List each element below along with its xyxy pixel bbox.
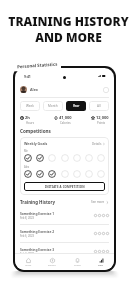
staticText: Month	[48, 104, 58, 108]
button[interactable]: Something Exercise 3	[20, 243, 109, 260]
staticText: See more	[91, 200, 105, 204]
button[interactable]: Day 4	[61, 170, 69, 178]
staticText: Alex	[30, 87, 38, 92]
staticText: Training History	[20, 199, 56, 205]
button[interactable]: 41,000	[54, 115, 72, 125]
staticText: Stats	[98, 264, 104, 267]
button[interactable]: Day 6	[85, 170, 93, 178]
staticText: Me	[24, 149, 28, 153]
button[interactable]: Notifications	[103, 87, 109, 93]
staticText: Details	[92, 142, 102, 146]
staticText: Week	[26, 104, 34, 108]
staticText: Competitions	[20, 128, 51, 134]
staticText: Weekly Goals	[24, 141, 48, 146]
staticText: Points	[97, 121, 106, 125]
button[interactable]: Day 3	[48, 170, 56, 178]
button[interactable]: Day 1	[24, 154, 32, 162]
button[interactable]: Alex	[20, 84, 109, 95]
button[interactable]: All	[89, 101, 109, 111]
staticText: 2h	[25, 115, 30, 120]
button[interactable]: Details	[92, 142, 105, 146]
button[interactable]: Year	[66, 101, 86, 111]
button[interactable]: Day 1	[24, 170, 32, 178]
button[interactable]: Day 7	[97, 154, 105, 162]
staticText: Explore	[48, 264, 56, 267]
staticText: Something Exercise 3	[20, 247, 55, 251]
staticText: Personal Statistics	[17, 61, 58, 69]
staticText: 12,000	[96, 115, 109, 120]
staticText: Profile	[74, 264, 81, 267]
staticText: 9:41	[24, 74, 31, 79]
button[interactable]: Explore	[41, 254, 63, 270]
button[interactable]: Something Exercise 1	[20, 207, 109, 224]
button[interactable]: Day 4	[61, 154, 69, 162]
staticText: Calories	[60, 121, 71, 125]
button[interactable]: Day 2	[36, 154, 44, 162]
staticText: AND MORE	[35, 29, 102, 45]
button[interactable]: Day 5	[73, 154, 81, 162]
button[interactable]: Day 2	[36, 170, 44, 178]
button[interactable]: Day 3	[48, 154, 56, 162]
staticText: Feb 8, 2023	[20, 216, 34, 220]
button[interactable]: Stats	[90, 254, 112, 270]
button[interactable]: Day 6	[85, 154, 93, 162]
button[interactable]: Home	[17, 254, 39, 270]
staticText: Something Exercise 2	[20, 229, 55, 233]
staticText: Something Exercise 1	[20, 211, 55, 215]
staticText: Alex	[24, 165, 30, 169]
button[interactable]: Day 5	[73, 170, 81, 178]
staticText: Year	[73, 104, 80, 108]
staticText: TRAINING HISTORY	[8, 13, 129, 29]
staticText: Hours	[26, 121, 34, 125]
staticText: Feb 4, 2023	[20, 252, 34, 256]
staticText: All	[97, 104, 101, 108]
button[interactable]: Something Exercise 2	[20, 225, 109, 242]
button[interactable]: Profile	[66, 254, 88, 270]
button[interactable]: INITIATE A COMPETITION	[24, 182, 105, 191]
button[interactable]: Day 7	[97, 170, 105, 178]
staticText: INITIATE A COMPETITION	[45, 185, 85, 189]
staticText: 41,000	[59, 115, 72, 120]
button[interactable]: See more	[91, 200, 109, 204]
button[interactable]: Week	[20, 101, 40, 111]
button[interactable]: 2h	[20, 115, 34, 125]
button[interactable]: 12,000	[91, 115, 109, 125]
staticText: Feb 6, 2023	[20, 234, 34, 238]
button[interactable]: Month	[43, 101, 63, 111]
staticText: Home	[25, 264, 32, 267]
